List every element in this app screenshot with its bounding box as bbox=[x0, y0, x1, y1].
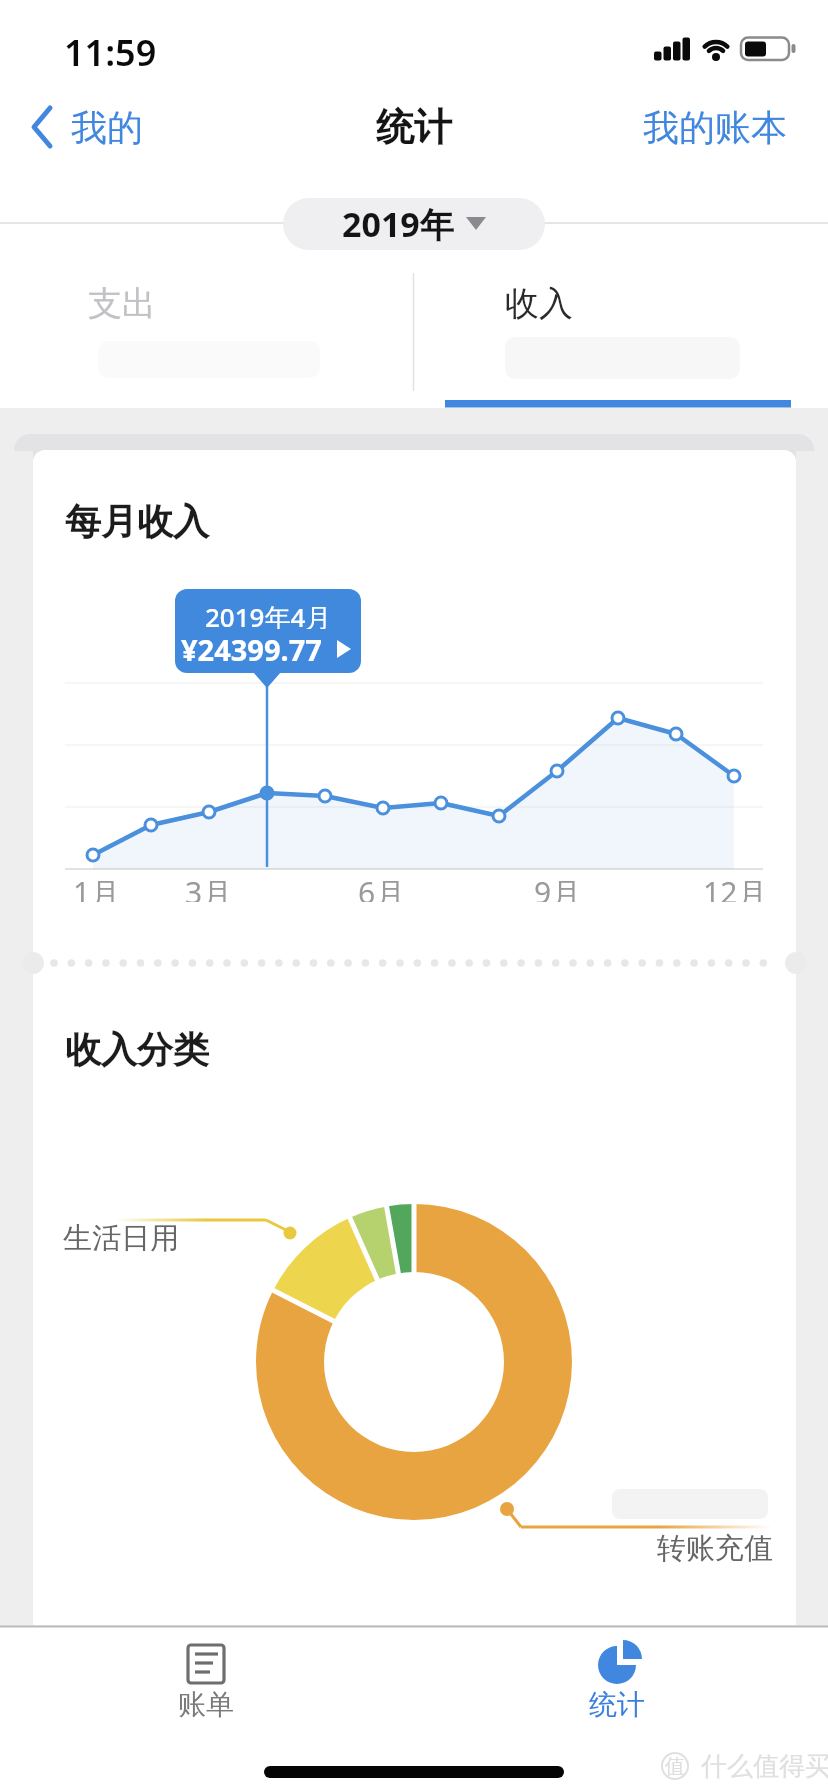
staticText: 我的账本 bbox=[643, 105, 787, 150]
staticText: 6月 bbox=[358, 872, 406, 902]
staticText: 11:59 bbox=[64, 28, 157, 70]
staticText: 12月 bbox=[703, 872, 768, 902]
staticText: 转账充值 bbox=[657, 1530, 773, 1564]
staticText: ¥24399.77 bbox=[181, 630, 322, 668]
staticText: 我的 bbox=[71, 105, 143, 150]
button[interactable]: 收入 bbox=[415, 258, 828, 408]
staticText: 统计 bbox=[589, 1687, 645, 1721]
button[interactable]: 账单 bbox=[100, 1630, 312, 1740]
staticText: 2019年4月 bbox=[205, 599, 332, 629]
staticText: 收入 bbox=[505, 282, 573, 324]
staticText: 1月 bbox=[73, 872, 121, 902]
staticText: 2019年 bbox=[342, 201, 454, 247]
staticText: 统计 bbox=[376, 103, 452, 151]
staticText: 账单 bbox=[178, 1687, 234, 1721]
staticText: 9月 bbox=[534, 872, 582, 902]
staticText: 支出 bbox=[88, 282, 156, 324]
staticText: 生活日用 bbox=[63, 1220, 179, 1254]
staticText: 每月收入 bbox=[65, 499, 209, 544]
staticText: 值 bbox=[665, 1754, 685, 1779]
button[interactable]: 我的账本 bbox=[630, 102, 800, 152]
staticText: 3月 bbox=[185, 872, 233, 902]
button[interactable]: 2019年 bbox=[283, 198, 545, 250]
button[interactable]: 支出 bbox=[0, 258, 412, 408]
button[interactable]: 我的 bbox=[26, 100, 156, 154]
button[interactable]: 统计 bbox=[514, 1630, 726, 1740]
staticText: 什么值得买 bbox=[701, 1750, 828, 1782]
staticText: 收入分类 bbox=[65, 1027, 209, 1072]
